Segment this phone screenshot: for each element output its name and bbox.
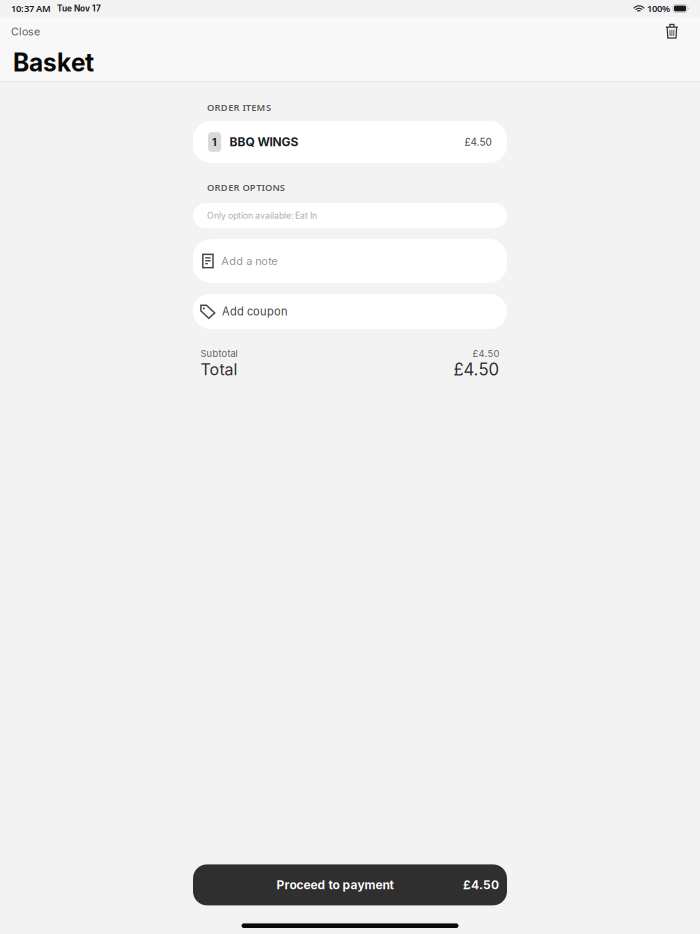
- staticText: Only option available: Eat In: [207, 210, 317, 221]
- button[interactable]: Add a note: [193, 239, 507, 283]
- staticText: Add a note: [221, 254, 277, 268]
- staticText: Subtotal: [200, 348, 237, 359]
- staticText: £4.50: [464, 136, 491, 148]
- staticText: Total: [200, 360, 237, 379]
- staticText: £4.50: [463, 878, 499, 892]
- staticText: 100%: [647, 2, 670, 15]
- button[interactable]: Delete basket: [654, 20, 700, 42]
- staticText: BBQ WINGS: [230, 135, 299, 149]
- staticText: £4.50: [453, 359, 499, 380]
- staticText: ORDER ITEMS: [207, 101, 271, 114]
- staticText: Basket: [13, 48, 94, 77]
- staticText: 10:37 AM: [11, 2, 51, 15]
- staticText: ORDER OPTIONS: [207, 181, 285, 194]
- button[interactable]: Proceed to payment: [193, 864, 507, 905]
- staticText: Add coupon: [222, 305, 288, 318]
- staticText: 1: [212, 135, 217, 148]
- staticText: Close: [11, 25, 40, 38]
- staticText: Proceed to payment: [276, 878, 393, 892]
- button[interactable]: Add coupon: [193, 294, 507, 329]
- staticText: Tue Nov 17: [57, 3, 101, 13]
- button[interactable]: Close: [0, 20, 51, 42]
- staticText: £4.50: [472, 348, 499, 359]
- button[interactable]: 1 BBQ WINGS, £4.50: [193, 121, 507, 163]
